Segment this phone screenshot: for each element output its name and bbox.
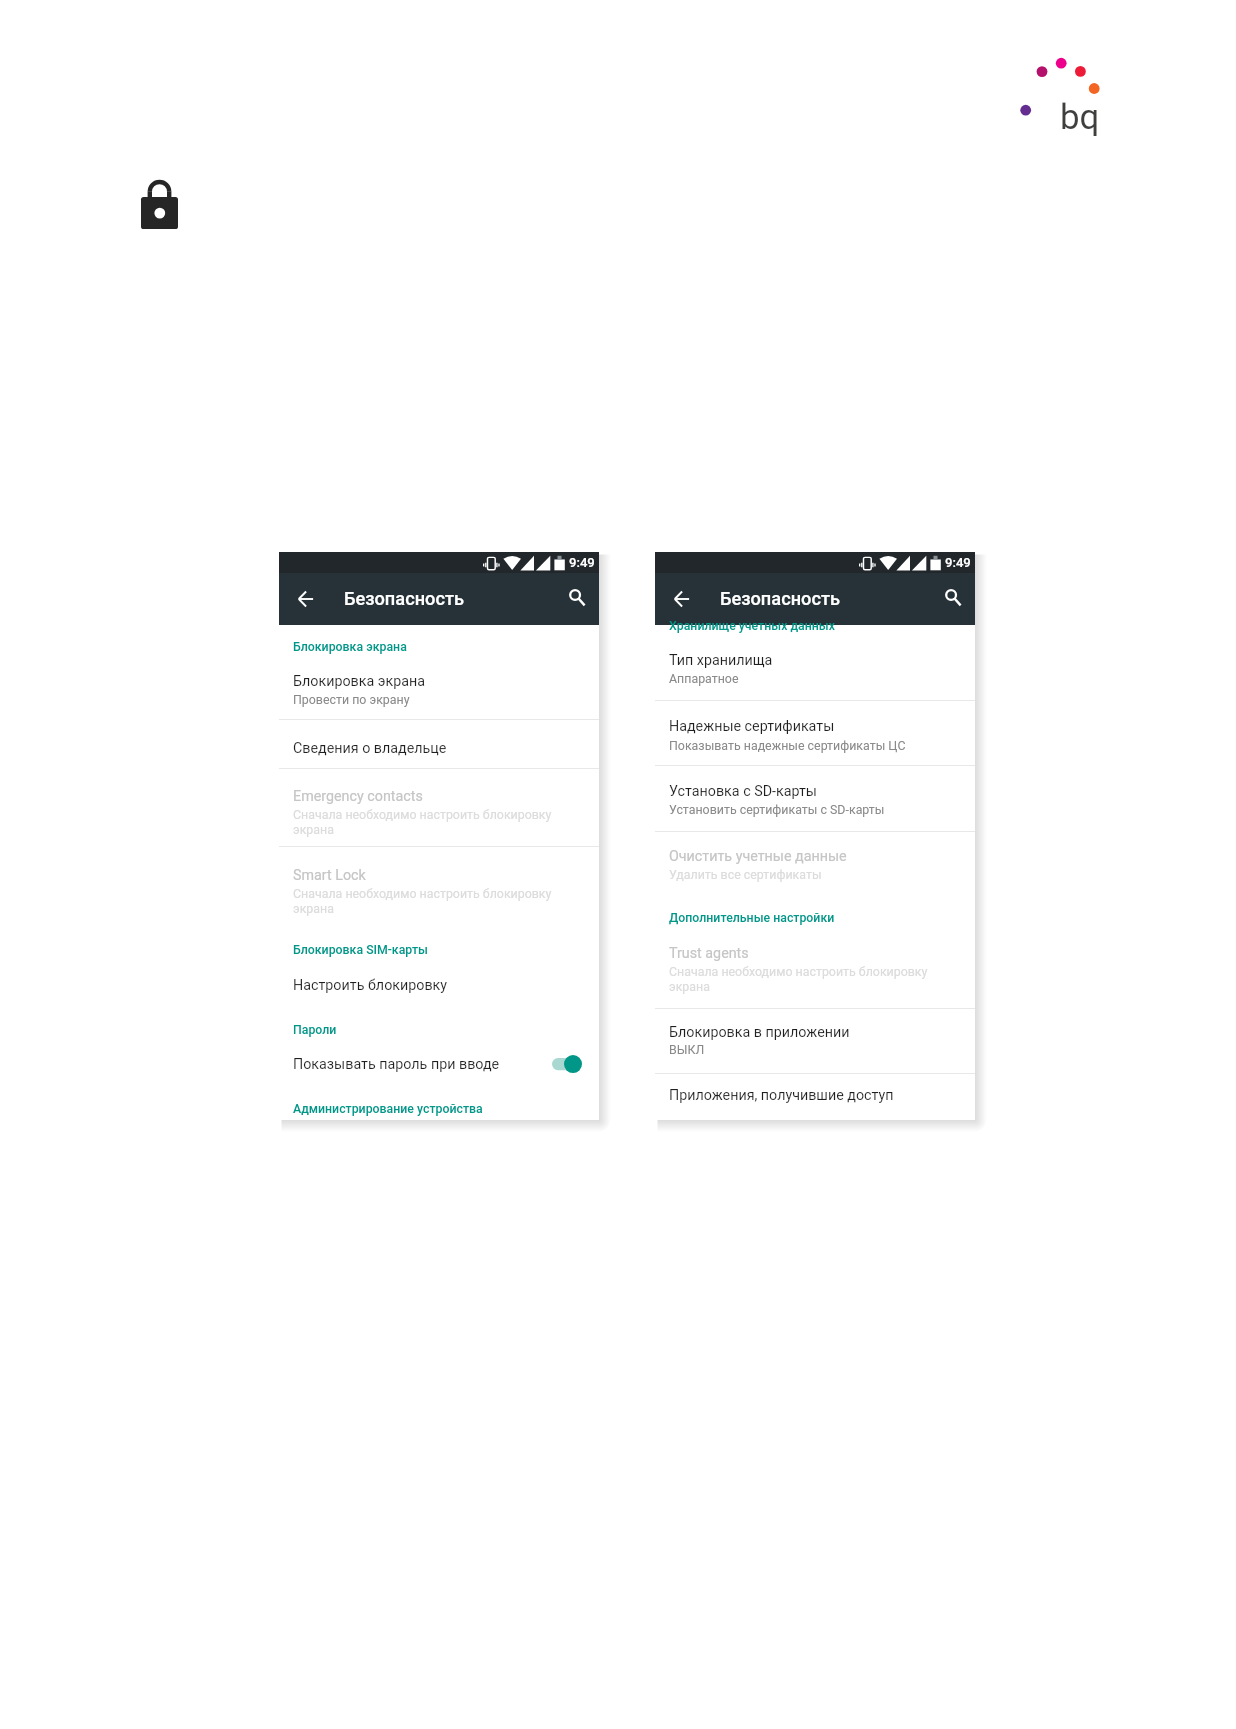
staticText: Тип хранилища [669, 652, 773, 669]
staticText: Пароли [293, 1023, 337, 1037]
staticText: Emergency contacts [293, 788, 423, 805]
staticText: ВЫКЛ [669, 1042, 705, 1057]
button[interactable]: Приложения, получившие доступ [655, 1074, 975, 1122]
button[interactable]: Search [556, 573, 600, 625]
button[interactable]: Emergency contacts [279, 769, 599, 846]
button[interactable]: Блокировка экрана [279, 658, 599, 719]
staticText: Сведения о владельце [293, 740, 447, 757]
button[interactable]: Trust agents [655, 930, 975, 1007]
staticText: Блокировка экрана [293, 673, 426, 690]
staticText: Провести по экрану [293, 692, 410, 707]
button[interactable]: Настроить блокировку [279, 962, 599, 1010]
staticText: Удалить все сертификаты [669, 867, 822, 882]
staticText: Показывать пароль при вводе [293, 1056, 500, 1073]
button[interactable]: Back [285, 573, 327, 625]
button[interactable]: Надежные сертификаты [655, 701, 975, 765]
staticText: Очистить учетные данные [669, 848, 847, 865]
button[interactable]: Search [932, 573, 976, 625]
staticText: Показывать надежные сертификаты ЦС [669, 738, 906, 753]
button[interactable]: Показывать пароль при вводе [279, 1041, 599, 1089]
button[interactable]: Установка с SD-карты [655, 766, 975, 831]
staticText: Настроить блокировку [293, 977, 448, 994]
staticText: Установка с SD-карты [669, 783, 817, 800]
staticText: 9:49 [569, 555, 595, 570]
staticText: Установить сертификаты с SD-карты [669, 802, 885, 817]
staticText: Дополнительные настройки [669, 911, 835, 925]
button[interactable]: Back [661, 573, 703, 625]
button[interactable]: Очистить учетные данные [655, 832, 975, 897]
staticText: Сначала необходимо настроить блокировку … [293, 886, 579, 916]
staticText: Безопасность [344, 588, 465, 609]
staticText: Хранилище учетных данных [669, 619, 835, 633]
staticText: Блокировка SIM-карты [293, 943, 428, 957]
staticText: 9:49 [945, 555, 971, 570]
staticText: Smart Lock [293, 867, 366, 884]
staticText: Trust agents [669, 945, 749, 962]
staticText: Сначала необходимо настроить блокировку … [293, 807, 579, 837]
staticText: Блокировка экрана [293, 640, 407, 654]
button[interactable]: Show password toggle [552, 1052, 586, 1076]
staticText: Аппаратное [669, 671, 739, 686]
staticText: Надежные сертификаты [669, 718, 835, 735]
button[interactable]: Сведения о владельце [279, 720, 599, 768]
staticText: Блокировка в приложении [669, 1024, 850, 1041]
staticText: Безопасность [720, 588, 841, 609]
button[interactable]: Блокировка в приложении [655, 1009, 975, 1072]
staticText: Администрирование устройства [293, 1102, 483, 1116]
staticText: Сначала необходимо настроить блокировку … [669, 964, 955, 994]
button[interactable]: Smart Lock [279, 847, 599, 929]
staticText: Приложения, получившие доступ [669, 1087, 894, 1104]
staticText: bq [1060, 97, 1100, 138]
button[interactable]: Тип хранилища [655, 637, 975, 700]
